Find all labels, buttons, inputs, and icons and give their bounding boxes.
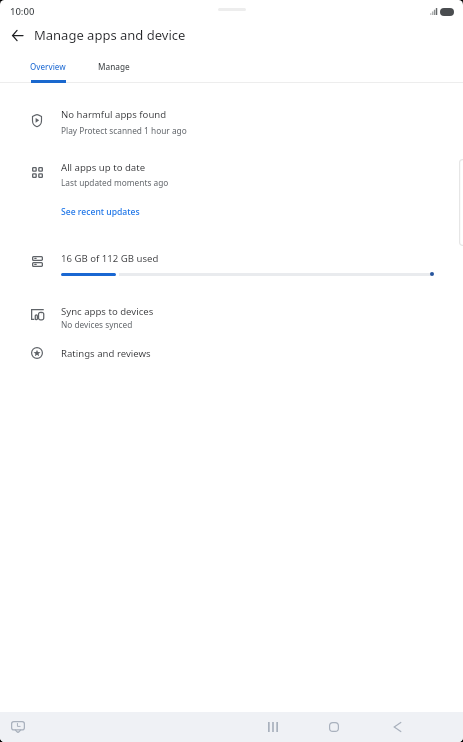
button[interactable]: All apps up to date — [0, 154, 463, 194]
button[interactable]: 16 GB of 112 GB used — [0, 245, 463, 287]
button[interactable]: Manage — [84, 50, 144, 83]
button[interactable]: Recents — [261, 715, 285, 739]
staticText: Sync apps to devices — [61, 305, 154, 318]
staticText: Ratings and reviews — [61, 347, 151, 360]
staticText: No harmful apps found — [61, 108, 167, 121]
button[interactable]: Ratings and reviews — [0, 340, 463, 368]
staticText: 10:00 — [10, 5, 35, 18]
button[interactable]: Back — [385, 715, 409, 739]
button[interactable]: Home — [322, 715, 346, 739]
staticText: 16 GB of 112 GB used — [61, 252, 159, 265]
button[interactable]: Back — [6, 24, 29, 47]
staticText: Last updated moments ago — [61, 177, 169, 188]
staticText: Play Protect scanned 1 hour ago — [61, 125, 187, 136]
button[interactable]: No harmful apps found — [0, 101, 463, 141]
button[interactable]: Hide keyboard — [6, 715, 30, 739]
staticText: All apps up to date — [61, 161, 146, 174]
staticText: No devices synced — [61, 319, 133, 330]
button[interactable]: Overview — [12, 50, 84, 83]
staticText: Manage apps and device — [34, 26, 186, 44]
button[interactable]: See recent updates — [0, 200, 463, 224]
staticText: See recent updates — [61, 206, 140, 218]
button[interactable]: Sync apps to devices — [0, 298, 463, 336]
staticText: Overview — [30, 61, 66, 72]
staticText: Manage — [98, 61, 130, 72]
